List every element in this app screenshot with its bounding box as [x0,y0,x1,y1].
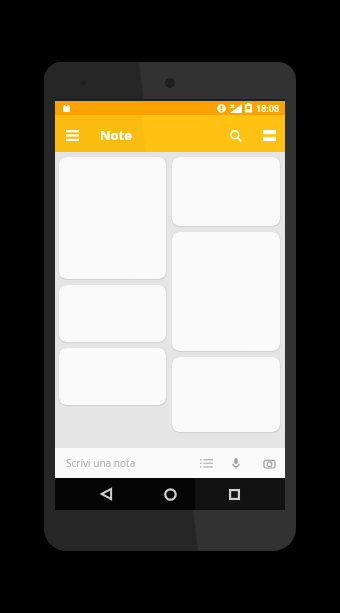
button[interactable]: Navigation menu [59,122,86,149]
staticText: Scrivi una nota [66,456,136,470]
button[interactable]: New photo note [257,450,281,476]
button[interactable]: Switch view [256,122,283,149]
button[interactable]: Recent apps [220,478,248,510]
staticText: 18:08 [256,102,280,114]
button[interactable]: New list [194,450,218,476]
button[interactable]: Back [92,478,120,510]
button[interactable]: Search [222,122,249,149]
button[interactable]: Home [156,478,184,510]
button[interactable]: New voice note [224,450,248,476]
staticText: Note [100,126,133,144]
